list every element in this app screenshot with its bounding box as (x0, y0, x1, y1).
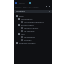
staticText: app (19, 14, 24, 17)
button[interactable]: res (14, 32, 52, 35)
staticText: values (24, 38, 32, 41)
staticText: Gradle Scripts (19, 41, 36, 44)
button[interactable]: app (14, 14, 52, 17)
staticText: demo (19, 2, 25, 5)
button[interactable]: Gradle Scripts (14, 41, 52, 44)
button[interactable]: demo › app › src › main (15, 6, 39, 9)
staticText: manifests (21, 17, 33, 20)
staticText: AndroidManifest (24, 20, 44, 23)
button[interactable]: AndroidManifest (14, 20, 52, 23)
button[interactable]: Android (14, 10, 52, 13)
button[interactable]: values (14, 38, 52, 41)
button[interactable]: kotlin+java (14, 23, 52, 26)
staticText: Android (16, 10, 25, 13)
staticText: res (21, 32, 25, 35)
button[interactable]: MainActivity (14, 26, 52, 29)
staticText: demo › app › src › main (15, 6, 39, 9)
button[interactable]: drawable (14, 35, 52, 38)
staticText: ui.theme (24, 29, 35, 32)
staticText: MainActivity (24, 26, 39, 29)
button[interactable]: ui.theme (14, 29, 52, 32)
button[interactable]: demo (19, 2, 25, 5)
button[interactable]: manifests (14, 17, 52, 20)
button[interactable]: Project (15, 2, 17, 4)
staticText: kotlin+java (21, 23, 34, 26)
staticText: drawable (24, 35, 35, 38)
